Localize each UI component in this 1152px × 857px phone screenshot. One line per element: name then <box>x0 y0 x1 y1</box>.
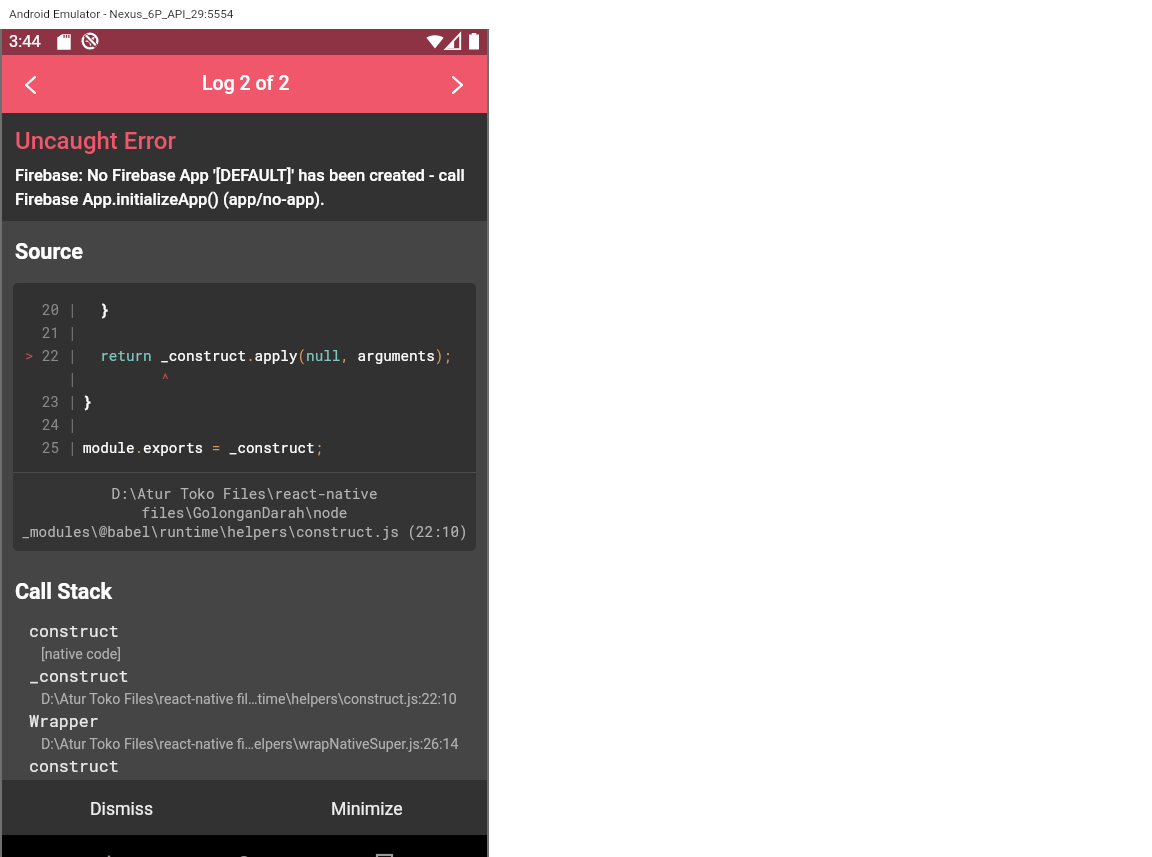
staticText: Log 2 of 2 <box>202 72 290 95</box>
staticText: 23 <box>42 392 60 411</box>
staticText: [native code] <box>41 646 122 663</box>
staticText: D:\Atur Toko Files\react-native fi…elper… <box>41 736 459 753</box>
staticText: construct <box>29 620 119 642</box>
staticText: | <box>68 346 77 365</box>
staticText: | <box>68 323 77 342</box>
staticText: 24 <box>42 415 60 434</box>
staticText: 21 <box>42 323 60 342</box>
staticText: D:\Atur Toko Files\react-native fil…time… <box>41 691 457 708</box>
button[interactable]: Home <box>219 835 269 857</box>
staticText: } <box>83 392 92 411</box>
staticText: Android Emulator - Nexus_6P_API_29:5554 <box>9 7 234 21</box>
staticText: | <box>68 392 77 411</box>
staticText: Wrapper <box>29 710 99 732</box>
staticText: | <box>68 300 77 319</box>
staticText: 3:44 <box>9 32 41 51</box>
staticText: Uncaught Error <box>15 127 176 155</box>
button[interactable]: construct <box>0 755 489 800</box>
staticText: Call Stack <box>15 579 113 604</box>
staticText: _construct <box>29 665 129 687</box>
staticText: | <box>68 438 77 457</box>
staticText: ^ <box>161 369 170 388</box>
staticText: } <box>83 300 109 319</box>
button[interactable]: Next log <box>433 55 489 113</box>
button[interactable]: construct <box>0 620 489 665</box>
staticText: Dismiss <box>90 799 154 820</box>
staticText: return _construct.apply(null, arguments)… <box>83 346 452 365</box>
staticText: Source <box>15 239 83 264</box>
staticText: > <box>25 346 34 365</box>
staticText: 20 <box>42 300 60 319</box>
staticText: | <box>68 369 77 388</box>
staticText: 25 <box>42 438 60 457</box>
button[interactable]: Recents <box>355 835 405 857</box>
button[interactable]: Dismiss <box>0 780 244 835</box>
staticText: 22 <box>42 346 60 365</box>
staticText: module.exports = _construct; <box>83 438 324 457</box>
staticText: D:\Atur Toko Files\react-native files\Go… <box>18 484 471 541</box>
staticText: Minimize <box>331 799 403 820</box>
staticText: | <box>68 415 77 434</box>
staticText: Firebase: No Firebase App '[DEFAULT]' ha… <box>15 166 472 209</box>
button[interactable]: Wrapper <box>0 710 489 755</box>
button[interactable]: Previous log <box>0 55 56 113</box>
button[interactable]: Back <box>84 835 134 857</box>
staticText: construct <box>29 755 119 777</box>
button[interactable]: _construct <box>0 665 489 710</box>
button[interactable]: Minimize <box>244 780 489 835</box>
